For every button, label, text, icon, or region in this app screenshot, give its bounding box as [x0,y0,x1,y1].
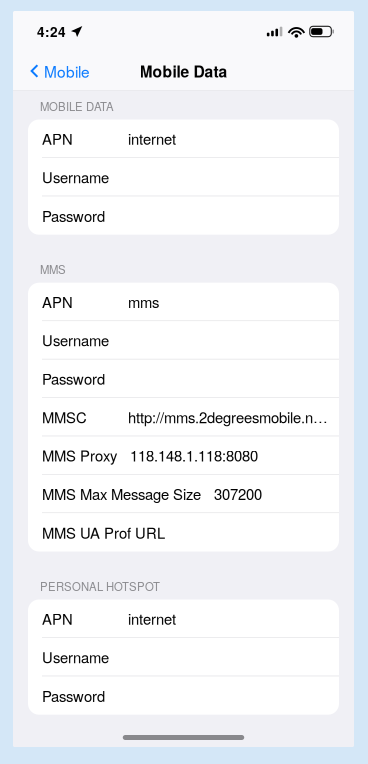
button[interactable]: Username [28,158,339,196]
button[interactable]: MMS Proxy [28,436,339,475]
staticText: MMS Proxy [42,445,117,466]
button[interactable]: MMS UA Prof URL [28,513,339,551]
button[interactable]: Password [28,196,339,235]
staticText: Password [42,205,105,226]
button[interactable]: MMS Max Message Size [28,475,339,513]
button[interactable]: Password [28,359,339,398]
staticText: internet [128,608,176,629]
button[interactable]: APN [28,599,339,638]
button[interactable]: APN [28,283,339,321]
staticText: 307200 [214,483,262,504]
staticText: APN [42,608,73,629]
button[interactable]: Username [28,638,339,676]
button[interactable]: Mobile [13,53,100,89]
staticText: MMSC [42,406,87,427]
staticText: Username [42,329,109,351]
staticText: MMS UA Prof URL [42,522,165,543]
staticText: MMS [40,261,66,277]
staticText: Username [42,646,109,667]
staticText: Password [42,685,105,706]
staticText: internet [128,128,176,149]
staticText: mms [128,291,159,312]
staticText: MOBILE DATA [40,98,114,114]
staticText: APN [42,128,73,149]
staticText: http://mms.2degreesmobile.net.n… [128,406,331,427]
staticText: Password [42,368,105,389]
staticText: MMS Max Message Size [42,483,201,504]
staticText: PERSONAL HOTSPOT [40,578,160,594]
staticText: Username [42,166,109,187]
staticText: Mobile [44,60,90,82]
button[interactable]: MMSC [28,398,339,436]
button[interactable]: Username [28,321,339,359]
staticText: Mobile Data [139,60,227,82]
button[interactable]: Password [28,676,339,715]
staticText: 4:24 [37,22,66,41]
staticText: 118.148.1.118:8080 [130,445,258,466]
staticText: APN [42,291,73,312]
button[interactable]: APN [28,119,339,158]
